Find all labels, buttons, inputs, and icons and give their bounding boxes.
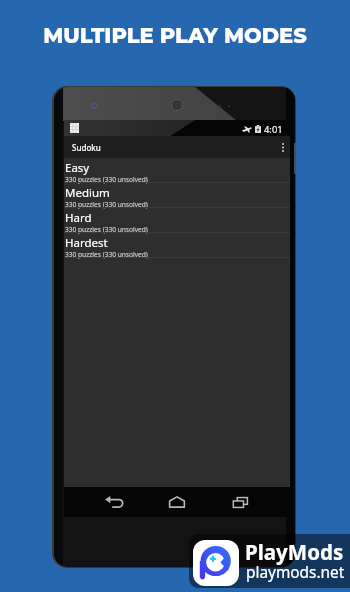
staticText: Hardest <box>65 235 108 251</box>
staticText: 4:01 <box>264 123 283 136</box>
button[interactable]: Home <box>164 489 190 515</box>
staticText: 330 puzzles (330 unsolved) <box>65 175 148 184</box>
staticText: 330 puzzles (330 unsolved) <box>65 225 148 234</box>
staticText: Hard <box>65 210 92 226</box>
staticText: playmods.net <box>246 562 345 583</box>
button[interactable]: PlayMods playmods.net <box>189 534 350 588</box>
staticText: Medium <box>65 185 110 201</box>
button[interactable]: Hardest <box>64 233 290 258</box>
button[interactable]: Recent apps <box>227 489 253 515</box>
button[interactable]: Medium <box>64 183 290 208</box>
button[interactable]: Hard <box>64 208 290 233</box>
staticText: 330 puzzles (330 unsolved) <box>65 200 148 209</box>
button[interactable]: Easy <box>64 158 290 183</box>
staticText: PlayMods <box>245 538 344 566</box>
staticText: 330 puzzles (330 unsolved) <box>65 250 148 259</box>
staticText: MULTIPLE PLAY MODES <box>43 23 307 47</box>
staticText: Easy <box>65 160 90 176</box>
button[interactable]: Back <box>101 489 127 515</box>
staticText: Sudoku <box>72 142 101 153</box>
button[interactable]: More options <box>276 136 290 158</box>
